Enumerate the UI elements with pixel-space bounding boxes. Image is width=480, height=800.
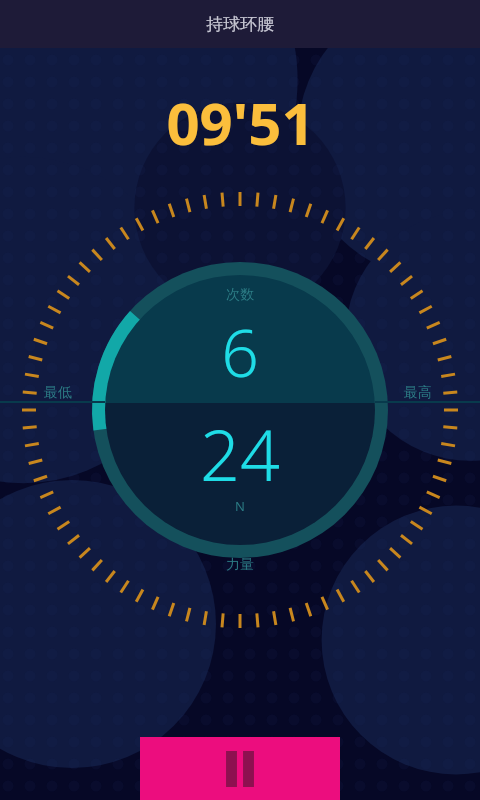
staticText: 24 [200,406,280,501]
staticText: 最低 [44,384,72,402]
button[interactable]: Pause [140,737,340,800]
staticText: N [235,497,245,515]
staticText: 6 [221,306,259,396]
staticText: 力量 [226,556,254,574]
staticText: 09'51 [166,83,315,162]
staticText: 次数 [226,286,254,304]
staticText: 最高 [404,384,432,402]
staticText: 持球环腰 [206,14,274,35]
